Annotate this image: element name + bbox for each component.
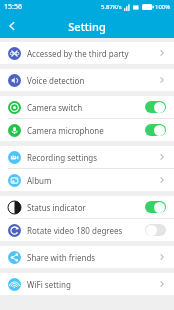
staticText: Rotate video 180 degrees — [27, 225, 145, 236]
button[interactable]: Camera switch — [0, 96, 174, 118]
staticText: Camera switch — [27, 102, 145, 113]
button[interactable]: Camera microphone — [0, 119, 174, 141]
staticText: Album — [27, 175, 158, 186]
button[interactable]: Album — [0, 169, 174, 191]
staticText: Camera microphone — [27, 125, 145, 136]
button[interactable]: Rotate video 180 degrees — [0, 219, 174, 241]
button[interactable]: On — [145, 101, 166, 113]
button[interactable]: Recording settings — [0, 146, 174, 168]
button[interactable]: Back — [0, 14, 24, 38]
staticText: Share with friends — [27, 252, 158, 263]
staticText: 5.87K/s — [101, 3, 122, 11]
button[interactable]: On — [145, 201, 166, 213]
button[interactable]: Voice detection — [0, 69, 174, 91]
staticText: 15:56 — [4, 2, 22, 12]
button[interactable]: Off — [145, 224, 166, 236]
staticText: 100% — [155, 3, 171, 11]
button[interactable]: Accessed by the third party — [0, 42, 174, 64]
staticText: Recording settings — [27, 152, 158, 163]
button[interactable]: Share with friends — [0, 246, 174, 268]
button[interactable]: WiFi setting — [0, 273, 174, 295]
staticText: Accessed by the third party — [27, 48, 158, 59]
staticText: Status indicator — [27, 202, 145, 213]
button[interactable]: On — [145, 124, 166, 136]
staticText: Setting — [68, 19, 106, 34]
staticText: Voice detection — [27, 75, 158, 86]
staticText: WiFi setting — [27, 279, 158, 290]
button[interactable]: Status indicator — [0, 196, 174, 218]
